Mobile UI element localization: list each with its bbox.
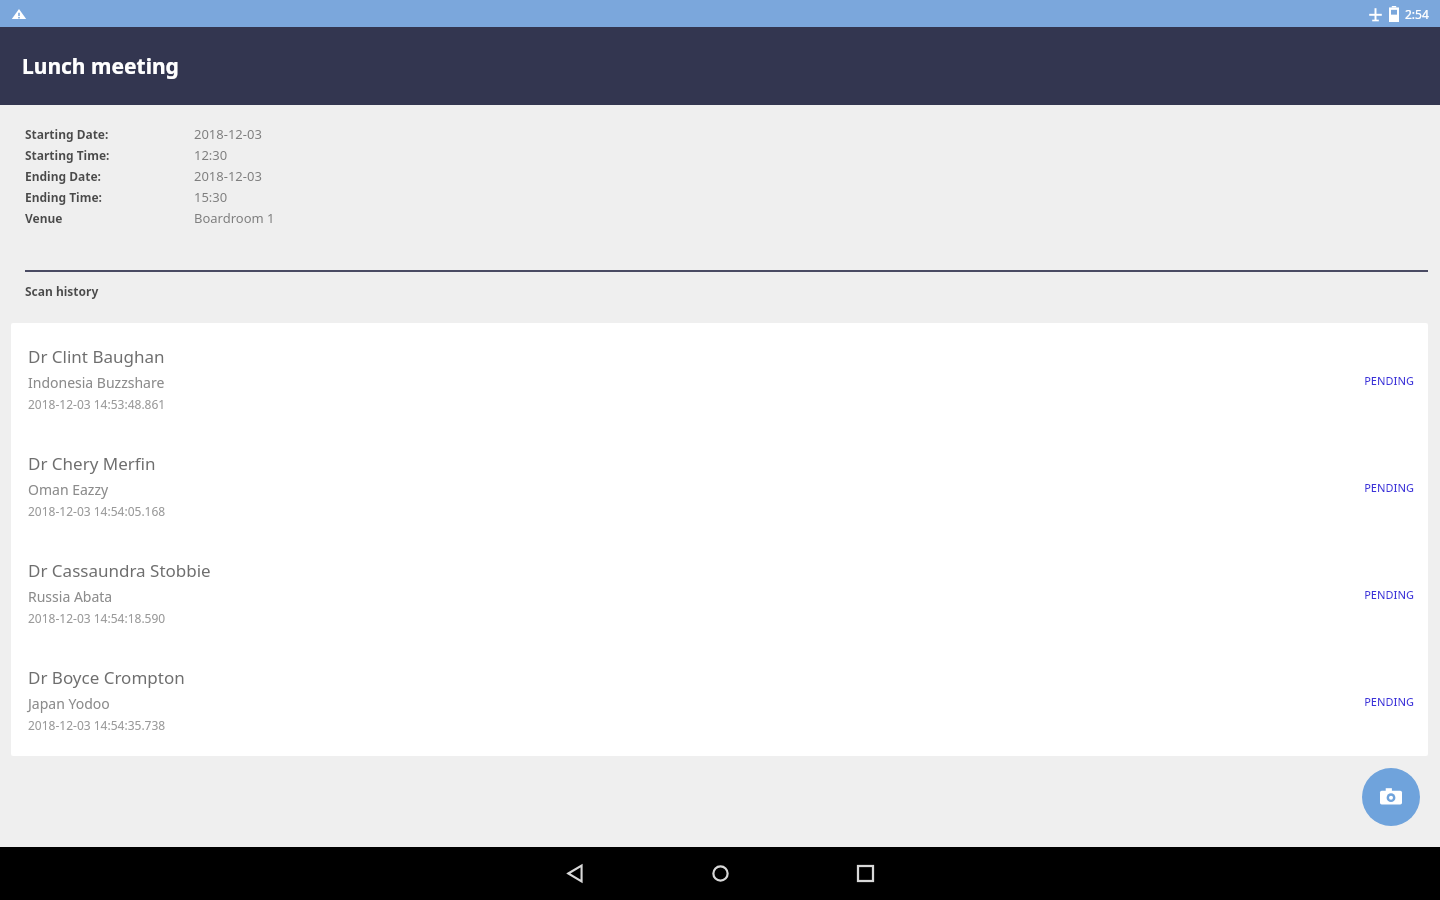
staticText: Japan Yodoo: [28, 694, 110, 713]
staticText: Dr Chery Merfin: [28, 452, 156, 475]
button[interactable]: Dr Clint Baughan: [11, 345, 1428, 452]
staticText: 2:54: [1405, 6, 1429, 22]
staticText: 15:30: [194, 188, 228, 206]
button[interactable]: Home: [648, 847, 793, 900]
staticText: Dr Cassaundra Stobbie: [28, 559, 211, 582]
staticText: Starting Time:: [25, 147, 110, 163]
staticText: Indonesia Buzzshare: [28, 373, 165, 392]
staticText: 2018-12-03: [194, 167, 262, 185]
staticText: PENDING: [1334, 480, 1414, 495]
staticText: Ending Date:: [25, 168, 101, 184]
staticText: PENDING: [1334, 587, 1414, 602]
staticText: Russia Abata: [28, 587, 113, 606]
staticText: Dr Clint Baughan: [28, 345, 165, 368]
staticText: 12:30: [194, 146, 228, 164]
staticText: Scan history: [25, 283, 99, 299]
staticText: Boardroom 1: [194, 209, 275, 227]
staticText: 2018-12-03 14:54:35.738: [28, 717, 166, 733]
staticText: Lunch meeting: [22, 52, 179, 81]
button[interactable]: Scan with camera: [1362, 768, 1420, 826]
staticText: Dr Boyce Crompton: [28, 666, 185, 689]
button[interactable]: Back: [503, 847, 648, 900]
button[interactable]: Recent apps: [793, 847, 938, 900]
button[interactable]: Dr Chery Merfin: [11, 452, 1428, 559]
staticText: 2018-12-03: [194, 125, 262, 143]
staticText: Ending Time:: [25, 189, 102, 205]
staticText: Oman Eazzy: [28, 480, 109, 499]
staticText: PENDING: [1334, 373, 1414, 388]
button[interactable]: Dr Boyce Crompton: [11, 666, 1428, 756]
staticText: 2018-12-03 14:54:18.590: [28, 610, 166, 626]
staticText: Starting Date:: [25, 126, 109, 142]
staticText: PENDING: [1334, 694, 1414, 709]
staticText: Venue: [25, 210, 63, 226]
button[interactable]: Dr Cassaundra Stobbie: [11, 559, 1428, 666]
staticText: 2018-12-03 14:54:05.168: [28, 503, 166, 519]
staticText: 2018-12-03 14:53:48.861: [28, 396, 166, 412]
